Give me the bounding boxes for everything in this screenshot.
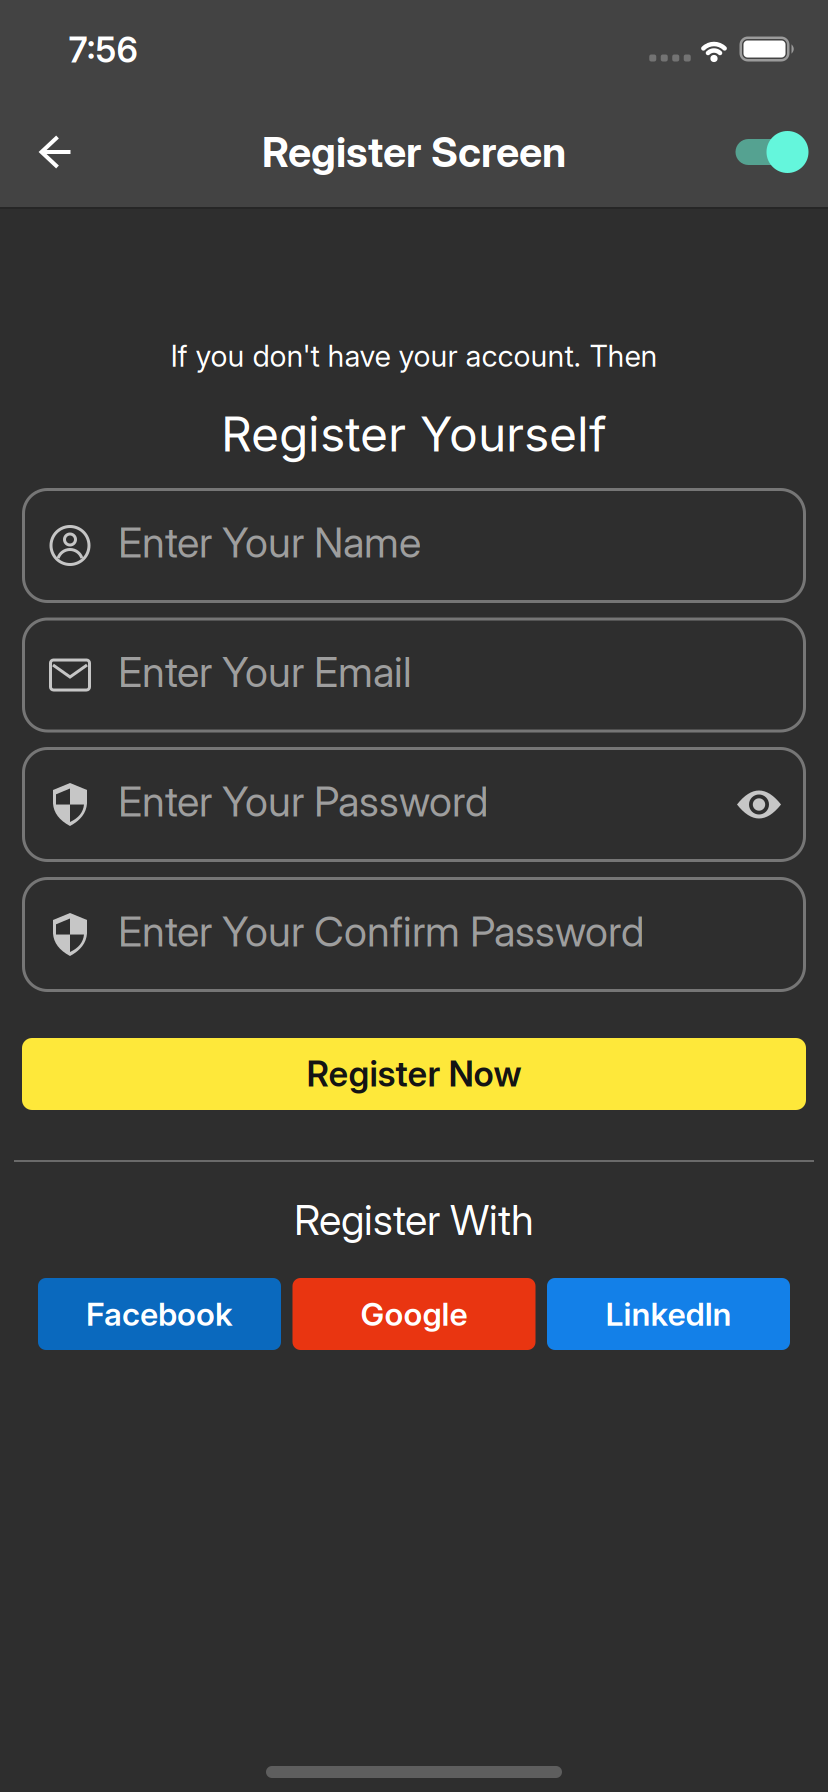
staticText: Register Screen [262, 128, 566, 176]
button[interactable]: Enter Your Password [22, 747, 806, 862]
button[interactable]: Back [26, 122, 86, 182]
button[interactable]: Show password [736, 789, 782, 819]
button[interactable]: Toggle dark mode [732, 130, 808, 174]
staticText: Enter Your Password [118, 777, 488, 826]
button[interactable]: Enter Your Name [22, 488, 806, 603]
button[interactable]: LinkedIn [547, 1278, 790, 1350]
staticText: LinkedIn [605, 1295, 731, 1333]
staticText: If you don't have your account. Then [170, 339, 657, 373]
staticText: Google [360, 1295, 467, 1333]
staticText: Enter Your Name [118, 518, 421, 567]
staticText: 7:56 [68, 30, 137, 70]
button[interactable]: Google [292, 1278, 535, 1350]
button[interactable]: Enter Your Confirm Password [22, 877, 806, 992]
button[interactable]: Facebook [38, 1278, 281, 1350]
button[interactable]: Register Now [22, 1038, 806, 1110]
staticText: Register Yourself [221, 406, 607, 462]
staticText: Enter Your Confirm Password [118, 907, 644, 956]
staticText: Enter Your Email [118, 648, 412, 696]
staticText: Register With [294, 1196, 534, 1244]
staticText: Facebook [86, 1295, 233, 1333]
staticText: Register Now [306, 1054, 521, 1094]
button[interactable]: Enter Your Email [22, 617, 806, 732]
